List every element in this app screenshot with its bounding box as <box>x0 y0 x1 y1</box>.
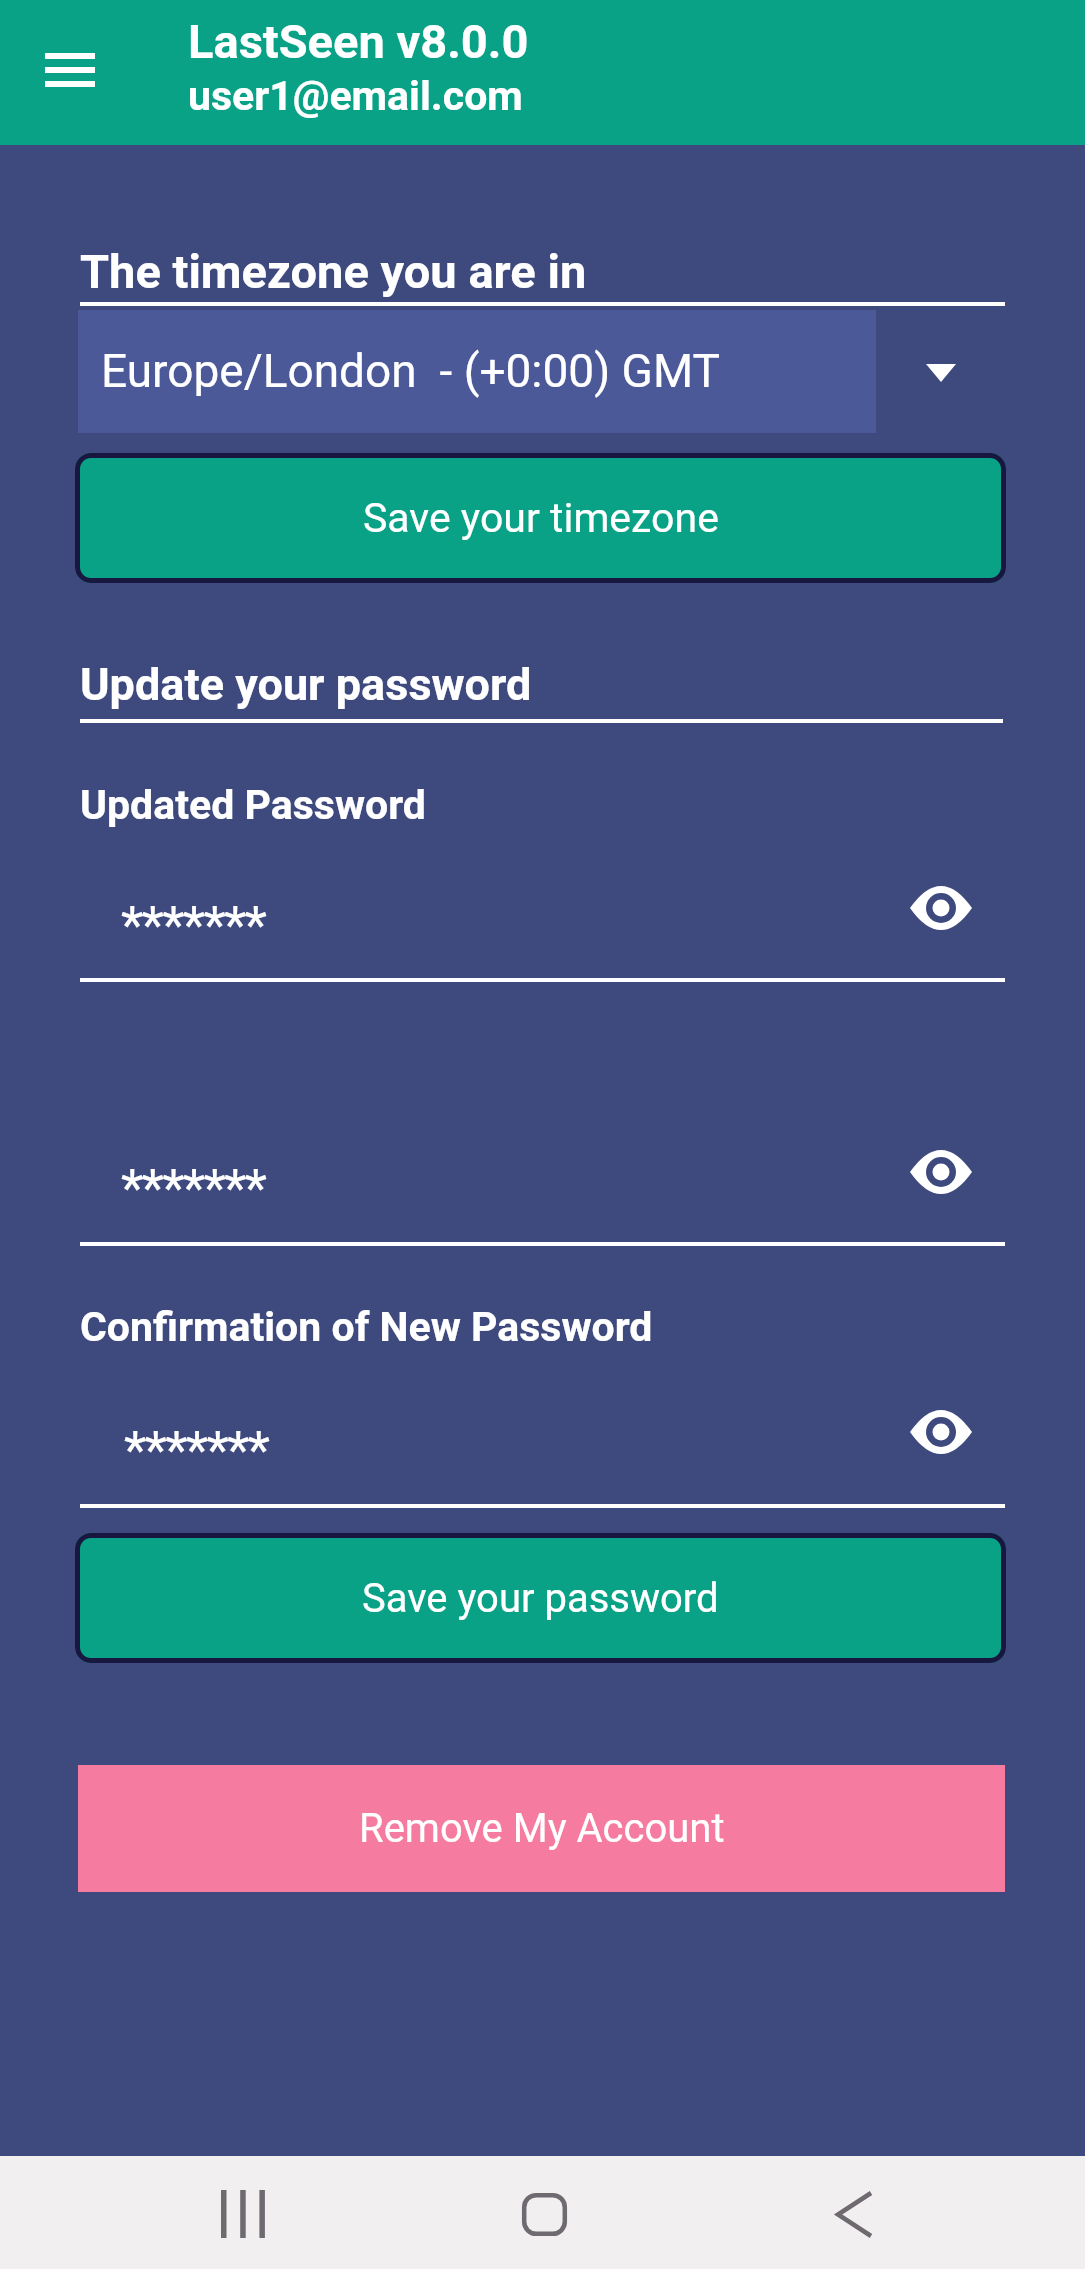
staticText: ******* <box>121 1158 266 1219</box>
staticText: Updated Password <box>80 781 426 829</box>
staticText: Remove My Account <box>359 1805 725 1852</box>
staticText: Save your timezone <box>363 494 719 542</box>
button[interactable] <box>78 310 876 433</box>
button[interactable] <box>502 2174 587 2254</box>
staticText: Confirmation of New Password <box>80 1303 653 1351</box>
button[interactable]: Save your timezone <box>75 453 1006 583</box>
staticText: Update your password <box>80 658 532 711</box>
button[interactable] <box>200 2174 285 2254</box>
staticText: ******* <box>124 1420 269 1481</box>
button[interactable]: Save your password <box>75 1533 1006 1663</box>
staticText: ******* <box>121 895 266 956</box>
staticText: LastSeen v8.0.0 <box>188 14 529 69</box>
staticText: Save your password <box>362 1575 719 1622</box>
button[interactable]: Remove My Account <box>78 1765 1005 1892</box>
staticText: user1@email.com <box>188 72 523 120</box>
button[interactable] <box>25 25 115 115</box>
staticText: Europe/London - (+0:00) GMT <box>101 344 720 398</box>
button[interactable] <box>812 2174 897 2254</box>
staticText: The timezone you are in <box>80 244 587 299</box>
